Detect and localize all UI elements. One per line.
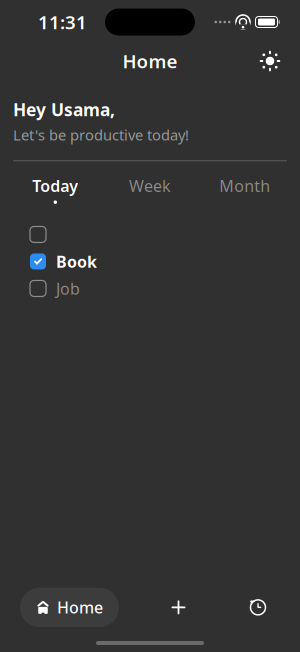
staticText: Month bbox=[219, 175, 270, 196]
button[interactable]: Job bbox=[30, 280, 270, 297]
staticText: Hey Usama, bbox=[13, 98, 115, 121]
button[interactable]: Home bbox=[20, 588, 119, 627]
staticText: Let's be productive today! bbox=[13, 125, 189, 144]
button[interactable]: Toggle appearance bbox=[252, 44, 288, 78]
button[interactable]: Untitled task bbox=[30, 226, 270, 243]
staticText: Today bbox=[32, 175, 78, 196]
staticText: Home bbox=[57, 597, 103, 618]
button[interactable]: History bbox=[238, 588, 278, 626]
staticText: Job bbox=[56, 278, 80, 299]
staticText: 11:31 bbox=[38, 10, 87, 34]
button[interactable]: Add task bbox=[158, 588, 198, 626]
button[interactable]: Week bbox=[103, 175, 197, 204]
button[interactable]: Month bbox=[197, 175, 292, 204]
button[interactable]: Book bbox=[30, 253, 270, 270]
staticText: Home bbox=[122, 49, 177, 73]
staticText: Week bbox=[129, 175, 171, 196]
staticText: Book bbox=[56, 251, 97, 272]
button[interactable]: Today bbox=[8, 175, 103, 204]
